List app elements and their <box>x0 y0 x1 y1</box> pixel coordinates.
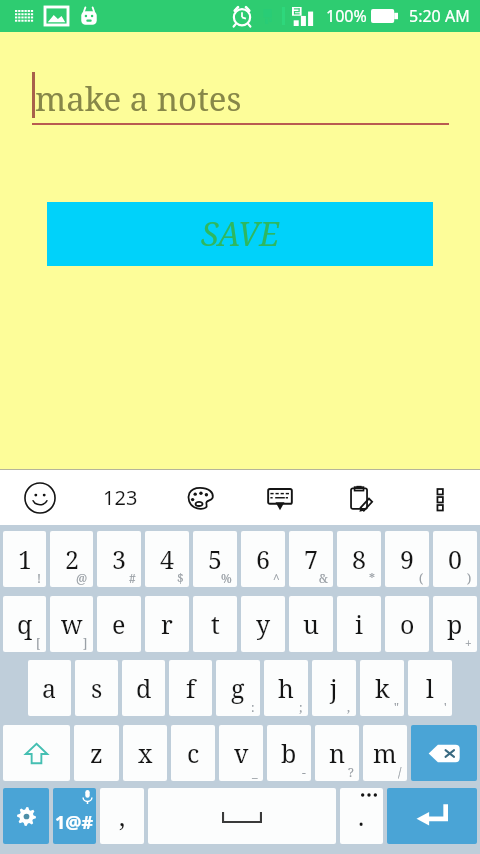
staticText: a <box>42 671 57 705</box>
staticText: v <box>234 736 249 770</box>
button[interactable]: a <box>28 660 71 716</box>
button[interactable]: Shift <box>3 725 70 781</box>
staticText: # <box>129 570 136 586</box>
staticText: s <box>91 671 103 705</box>
button[interactable]: p <box>433 596 477 652</box>
staticText: % <box>221 570 232 586</box>
button[interactable]: u <box>289 596 333 652</box>
staticText: z <box>90 736 103 770</box>
button[interactable]: l <box>408 660 452 716</box>
staticText: & <box>319 570 328 586</box>
staticText: m <box>373 736 397 770</box>
staticText: ( <box>419 570 424 586</box>
staticText: 7 <box>304 542 318 576</box>
button[interactable]: 3 <box>97 531 141 587</box>
staticText: d <box>136 671 152 705</box>
button[interactable]: 1 <box>3 531 46 587</box>
button[interactable]: r <box>145 596 189 652</box>
staticText: q <box>17 607 33 641</box>
staticText: , <box>119 799 126 833</box>
button[interactable]: e <box>97 596 141 652</box>
staticText: b <box>281 736 297 770</box>
button[interactable]: Enter <box>387 788 477 844</box>
button[interactable]: b <box>267 725 311 781</box>
button[interactable]: Emoji <box>0 470 80 525</box>
staticText: g <box>231 671 245 705</box>
staticText: 3 <box>112 542 126 576</box>
button[interactable]: z <box>74 725 119 781</box>
staticText: 5:20 AM <box>409 5 470 27</box>
button[interactable]: 4 <box>145 531 189 587</box>
staticText: 100% <box>326 5 367 27</box>
staticText: / <box>398 764 402 780</box>
staticText: 4 <box>160 542 174 576</box>
button[interactable]: j <box>312 660 356 716</box>
button[interactable]: SAVE <box>47 202 433 266</box>
staticText: ) <box>467 570 472 586</box>
staticText: ] <box>83 635 88 651</box>
button[interactable]: t <box>193 596 237 652</box>
staticText: o <box>400 607 415 641</box>
button[interactable]: 7 <box>289 531 333 587</box>
button[interactable]: k <box>360 660 404 716</box>
staticText: SAVE <box>201 212 280 256</box>
button[interactable]: 5 <box>193 531 237 587</box>
staticText: [ <box>36 635 41 651</box>
button[interactable]: Clipboard <box>320 470 400 525</box>
button[interactable]: Hide keyboard <box>240 470 320 525</box>
button[interactable]: . <box>340 788 383 844</box>
button[interactable]: n <box>315 725 359 781</box>
staticText: c <box>187 736 200 770</box>
staticText: ! <box>37 570 41 586</box>
button[interactable]: w <box>50 596 93 652</box>
button[interactable]: Theme <box>160 470 240 525</box>
button[interactable]: y <box>241 596 285 652</box>
button[interactable]: 6 <box>241 531 285 587</box>
button[interactable]: , <box>100 788 144 844</box>
staticText: 9 <box>400 542 414 576</box>
staticText: - <box>302 764 306 780</box>
button[interactable]: More options <box>400 470 480 525</box>
staticText: y <box>256 607 271 641</box>
button[interactable]: Space <box>148 788 336 844</box>
button[interactable]: d <box>122 660 165 716</box>
staticText: @ <box>76 570 88 586</box>
staticText: make a notes <box>35 76 242 121</box>
staticText: w <box>61 607 83 641</box>
button[interactable]: m <box>363 725 407 781</box>
staticText: e <box>112 607 126 641</box>
button[interactable]: q <box>3 596 46 652</box>
button[interactable]: 9 <box>385 531 429 587</box>
staticText: * <box>369 570 376 586</box>
button[interactable]: 0 <box>433 531 477 587</box>
staticText: , <box>347 699 351 715</box>
staticText: " <box>394 699 399 715</box>
button[interactable]: h <box>264 660 308 716</box>
staticText: i <box>355 607 364 641</box>
button[interactable]: x <box>123 725 167 781</box>
staticText: h <box>278 671 294 705</box>
button[interactable]: 1@# <box>53 788 96 844</box>
button[interactable]: c <box>171 725 215 781</box>
staticText: 8 <box>352 542 366 576</box>
button[interactable]: 8 <box>337 531 381 587</box>
button[interactable]: Delete <box>411 725 477 781</box>
staticText: j <box>330 671 338 705</box>
staticText: + <box>465 635 472 651</box>
staticText: 0 <box>448 542 462 576</box>
button[interactable]: i <box>337 596 381 652</box>
staticText: l <box>426 671 434 705</box>
button[interactable]: f <box>169 660 212 716</box>
staticText: : <box>251 699 255 715</box>
button[interactable]: Settings <box>3 788 49 844</box>
staticText: x <box>138 736 153 770</box>
button[interactable]: s <box>75 660 118 716</box>
staticText: ; <box>299 699 303 715</box>
button[interactable]: Numbers <box>80 470 160 525</box>
button[interactable]: v <box>219 725 263 781</box>
staticText: r <box>161 607 173 641</box>
button[interactable]: 2 <box>50 531 93 587</box>
button[interactable]: g <box>216 660 260 716</box>
staticText: 1 <box>18 542 32 576</box>
button[interactable]: o <box>385 596 429 652</box>
